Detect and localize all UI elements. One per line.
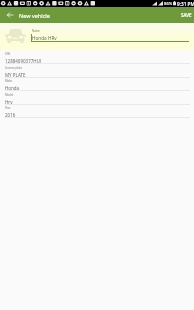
staticText: 86% <box>164 1 173 7</box>
staticText: Model <box>5 93 14 97</box>
staticText: 2016 <box>5 112 16 118</box>
staticText: 12884090377HUJ <box>5 58 42 64</box>
button[interactable]: Year <box>0 104 194 118</box>
staticText: 9:31 PM <box>177 1 194 7</box>
staticText: MY PLATE <box>5 72 26 78</box>
staticText: VIN <box>5 52 10 56</box>
staticText: New vehicle <box>19 12 50 19</box>
staticText: Year <box>5 106 11 110</box>
staticText: License plate <box>5 66 23 70</box>
button[interactable]: Model <box>0 91 194 105</box>
button[interactable]: Make <box>0 77 194 91</box>
button[interactable]: Name <box>31 27 189 42</box>
button[interactable]: Back <box>2 7 18 23</box>
staticText: Hrv <box>5 99 13 105</box>
button[interactable]: SAVE <box>176 8 194 22</box>
button[interactable]: VIN <box>0 50 194 64</box>
staticText: Make <box>5 79 13 83</box>
button[interactable]: License plate <box>0 64 194 78</box>
staticText: Honda <box>5 85 20 91</box>
staticText: SAVE <box>181 12 192 18</box>
staticText: Honda HRv <box>32 35 57 41</box>
staticText: Name <box>32 29 40 33</box>
